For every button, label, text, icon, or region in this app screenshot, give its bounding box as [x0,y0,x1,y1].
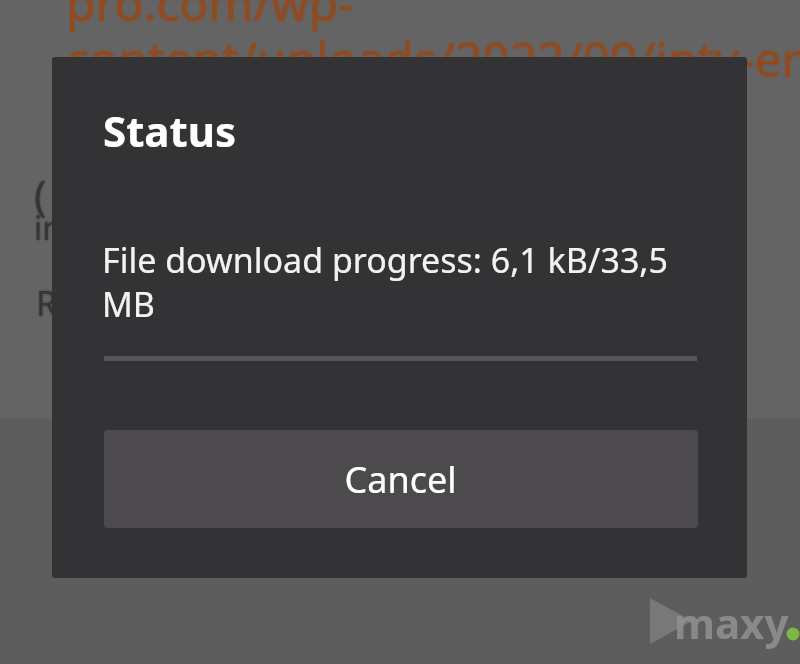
button[interactable]: Cancel download [104,430,698,528]
